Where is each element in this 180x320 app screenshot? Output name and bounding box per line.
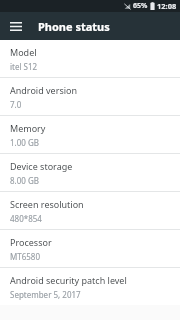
staticText: Model: [10, 46, 37, 58]
staticText: 480*854: [10, 213, 42, 224]
button[interactable]: Processor: [0, 230, 180, 267]
staticText: Phone status: [38, 19, 110, 34]
staticText: 1.00 GB: [10, 137, 39, 148]
staticText: 7.0: [10, 99, 22, 110]
staticText: 65%: [133, 1, 148, 11]
button[interactable]: Model: [0, 40, 180, 77]
staticText: 8.00 GB: [10, 175, 39, 186]
staticText: itel S12: [10, 61, 38, 72]
button[interactable]: Screen resolution: [0, 192, 180, 229]
staticText: Processor: [10, 236, 52, 248]
button[interactable]: Memory: [0, 116, 180, 153]
button[interactable]: Android version: [0, 78, 180, 115]
staticText: MT6580: [10, 251, 41, 262]
staticText: Android security patch level: [10, 274, 127, 286]
staticText: Device storage: [10, 160, 73, 172]
button[interactable]: Android security patch level: [0, 268, 180, 305]
staticText: September 5, 2017: [10, 289, 81, 300]
button[interactable]: Device storage: [0, 154, 180, 191]
staticText: 12:08: [157, 1, 177, 11]
staticText: Android version: [10, 84, 78, 96]
staticText: Screen resolution: [10, 198, 84, 210]
staticText: Memory: [10, 122, 46, 134]
button[interactable]: Open navigation menu: [7, 17, 25, 35]
